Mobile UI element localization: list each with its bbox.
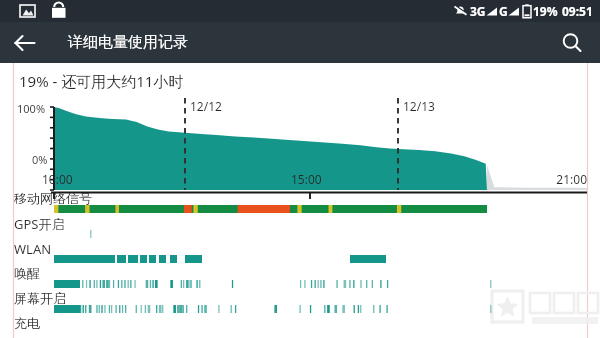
staticText: 21:00 (0, 171, 587, 187)
staticText: 3G (470, 3, 486, 19)
button[interactable]: Search (554, 25, 590, 61)
staticText: 09:51 (562, 3, 593, 19)
staticText: 19% - 还可用大约11小时 (19, 71, 184, 91)
staticText: 详细电量使用记录 (68, 33, 188, 52)
staticText: WLAN (14, 240, 52, 258)
staticText: G (499, 3, 508, 19)
staticText: 0% (32, 152, 48, 167)
staticText: 屏幕开启 (14, 290, 66, 306)
staticText: 15:00 (291, 171, 322, 187)
button[interactable]: GPS开启 (14, 215, 65, 233)
button[interactable]: Back (7, 25, 43, 61)
staticText: 19% (533, 3, 558, 19)
staticText: 唤醒 (14, 265, 40, 281)
button[interactable]: 屏幕开启 (14, 290, 66, 306)
button[interactable]: 移动网络信号 (14, 190, 92, 206)
staticText: GPS开启 (14, 215, 65, 233)
staticText: 移动网络信号 (14, 190, 92, 206)
button[interactable]: WLAN (14, 240, 52, 258)
staticText: 100% (17, 101, 46, 116)
staticText: 10:00 (42, 171, 73, 187)
staticText: 12/12 (190, 98, 222, 114)
staticText: 充电 (14, 315, 40, 331)
button[interactable]: 唤醒 (14, 265, 40, 281)
staticText: 12/13 (403, 98, 435, 114)
button[interactable]: 充电 (14, 315, 40, 331)
